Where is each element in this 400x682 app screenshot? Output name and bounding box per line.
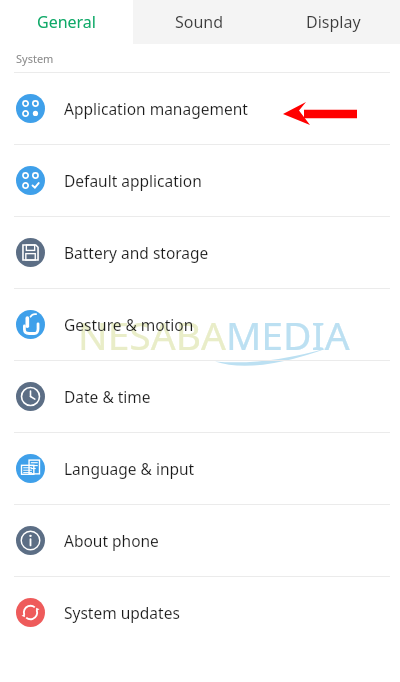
staticText: Language & input [64,458,195,479]
button[interactable]: Display [266,0,400,44]
staticText: MEDIA [226,308,350,361]
other: Pointer arrow [280,100,360,128]
button[interactable]: Default application [0,145,400,216]
button[interactable]: Sound [133,0,266,44]
button[interactable]: About phone [0,505,400,576]
staticText: Date & time [64,386,151,407]
button[interactable]: System updates [0,577,400,648]
staticText: System updates [64,602,180,623]
button[interactable]: General [0,0,133,44]
staticText: Gesture & motion [64,314,194,335]
staticText: General [37,11,96,33]
staticText: Display [306,11,361,33]
staticText: System [16,51,54,66]
button[interactable]: Application management [0,73,400,144]
staticText: Default application [64,170,202,191]
button[interactable]: Gesture & motion [0,289,400,360]
staticText: NESABA [78,308,226,361]
staticText: Application management [64,98,248,119]
button[interactable]: Language & input [0,433,400,504]
staticText: Sound [175,11,224,33]
staticText: Battery and storage [64,242,209,263]
button[interactable]: Date & time [0,361,400,432]
staticText: About phone [64,530,159,551]
button[interactable]: Battery and storage [0,217,400,288]
